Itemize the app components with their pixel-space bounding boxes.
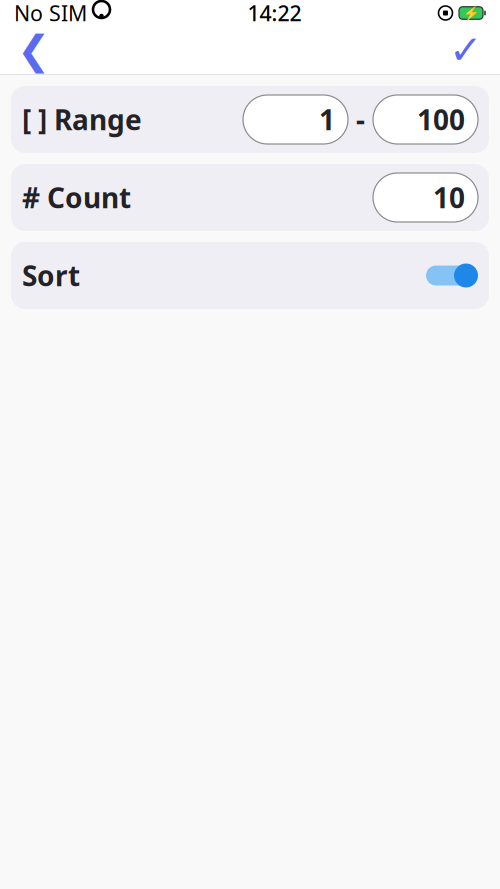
button[interactable]: Done [440,26,492,74]
button[interactable]: 1 [243,95,348,144]
button[interactable]: 100 [373,95,478,144]
staticText: ⚡ [462,5,479,21]
staticText: ✓ [449,27,483,73]
button[interactable]: Sort [426,262,478,288]
staticText: 10 [433,179,465,216]
staticText: 14:22 [247,0,301,27]
staticText: [ ] Range [22,101,142,138]
staticText: - [356,101,365,138]
staticText: No SIM [14,0,87,27]
staticText: 1 [319,101,335,138]
button[interactable]: Back [8,26,60,74]
staticText: 100 [417,101,465,138]
staticText: # Count [22,179,131,216]
staticText: Sort [22,257,80,294]
staticText: ❮ [17,27,51,73]
button[interactable]: 10 [373,173,478,222]
